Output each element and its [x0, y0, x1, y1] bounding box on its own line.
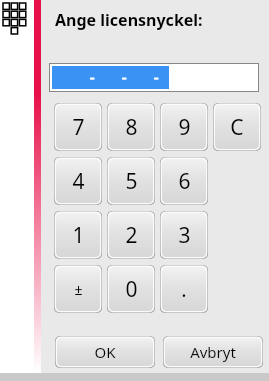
staticText: 9 — [178, 113, 191, 142]
button[interactable]: 8 — [107, 103, 155, 151]
staticText: C — [230, 113, 244, 142]
staticText: 7 — [72, 113, 85, 142]
staticText: 6 — [178, 167, 191, 196]
button[interactable]: OK — [55, 336, 155, 368]
staticText: 0 — [125, 275, 138, 304]
staticText: . — [181, 276, 187, 303]
button[interactable]: 7 — [54, 103, 102, 151]
button[interactable]: 0 — [107, 265, 155, 313]
staticText: Avbryt — [190, 342, 236, 362]
staticText: 4 — [72, 167, 85, 196]
button[interactable]: 2 — [107, 211, 155, 259]
button[interactable]: 9 — [160, 103, 208, 151]
button[interactable] — [49, 63, 259, 92]
staticText: Ange licensnyckel: — [55, 9, 203, 31]
staticText: 3 — [178, 221, 191, 250]
staticText: OK — [94, 342, 116, 362]
button[interactable]: ± — [54, 265, 102, 313]
button[interactable]: C — [213, 103, 261, 151]
staticText: ± — [74, 280, 83, 299]
button[interactable]: . — [160, 265, 208, 313]
button[interactable]: 6 — [160, 157, 208, 205]
staticText: 1 — [72, 221, 85, 250]
button[interactable]: Avbryt — [163, 336, 263, 368]
staticText: 5 — [125, 167, 138, 196]
button[interactable]: 1 — [54, 211, 102, 259]
button[interactable]: 3 — [160, 211, 208, 259]
staticText: 2 — [125, 221, 138, 250]
button[interactable]: 4 — [54, 157, 102, 205]
other: Keypad — [3, 3, 31, 35]
button[interactable]: 5 — [107, 157, 155, 205]
staticText: 8 — [125, 113, 138, 142]
